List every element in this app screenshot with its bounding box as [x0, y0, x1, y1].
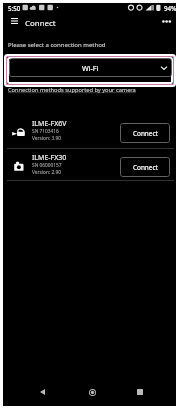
button[interactable]: Recent apps [130, 382, 150, 402]
staticText: Version: 2.90 [32, 169, 61, 176]
button[interactable]: Navigation menu [5, 12, 23, 30]
staticText: Connect [133, 163, 158, 172]
staticText: SN 7103416 [32, 128, 59, 135]
staticText: ILME-FX6V [32, 119, 67, 129]
button[interactable]: ILME-FX6V [3, 114, 176, 147]
button[interactable]: More options [157, 12, 175, 30]
staticText: SN 06000157 [32, 162, 62, 169]
button[interactable]: Wi-Fi [9, 58, 172, 77]
staticText: Wi-Fi [82, 63, 99, 73]
staticText: ILME-FX30 [32, 153, 67, 163]
staticText: 5:50 [8, 4, 21, 12]
button[interactable]: Connect [120, 123, 170, 143]
staticText: Connect [25, 18, 56, 29]
staticText: 94% [164, 4, 177, 12]
staticText: Please select a connection method [8, 41, 106, 49]
staticText: Connect [133, 129, 158, 138]
button[interactable]: Connection methods supported by your cam… [8, 86, 136, 94]
button[interactable]: Back [32, 382, 52, 402]
button[interactable]: ILME-FX30 [3, 148, 176, 181]
button[interactable]: Home [82, 382, 102, 402]
staticText: Version: 3.90 [32, 135, 61, 142]
button[interactable]: Connect [120, 157, 170, 177]
